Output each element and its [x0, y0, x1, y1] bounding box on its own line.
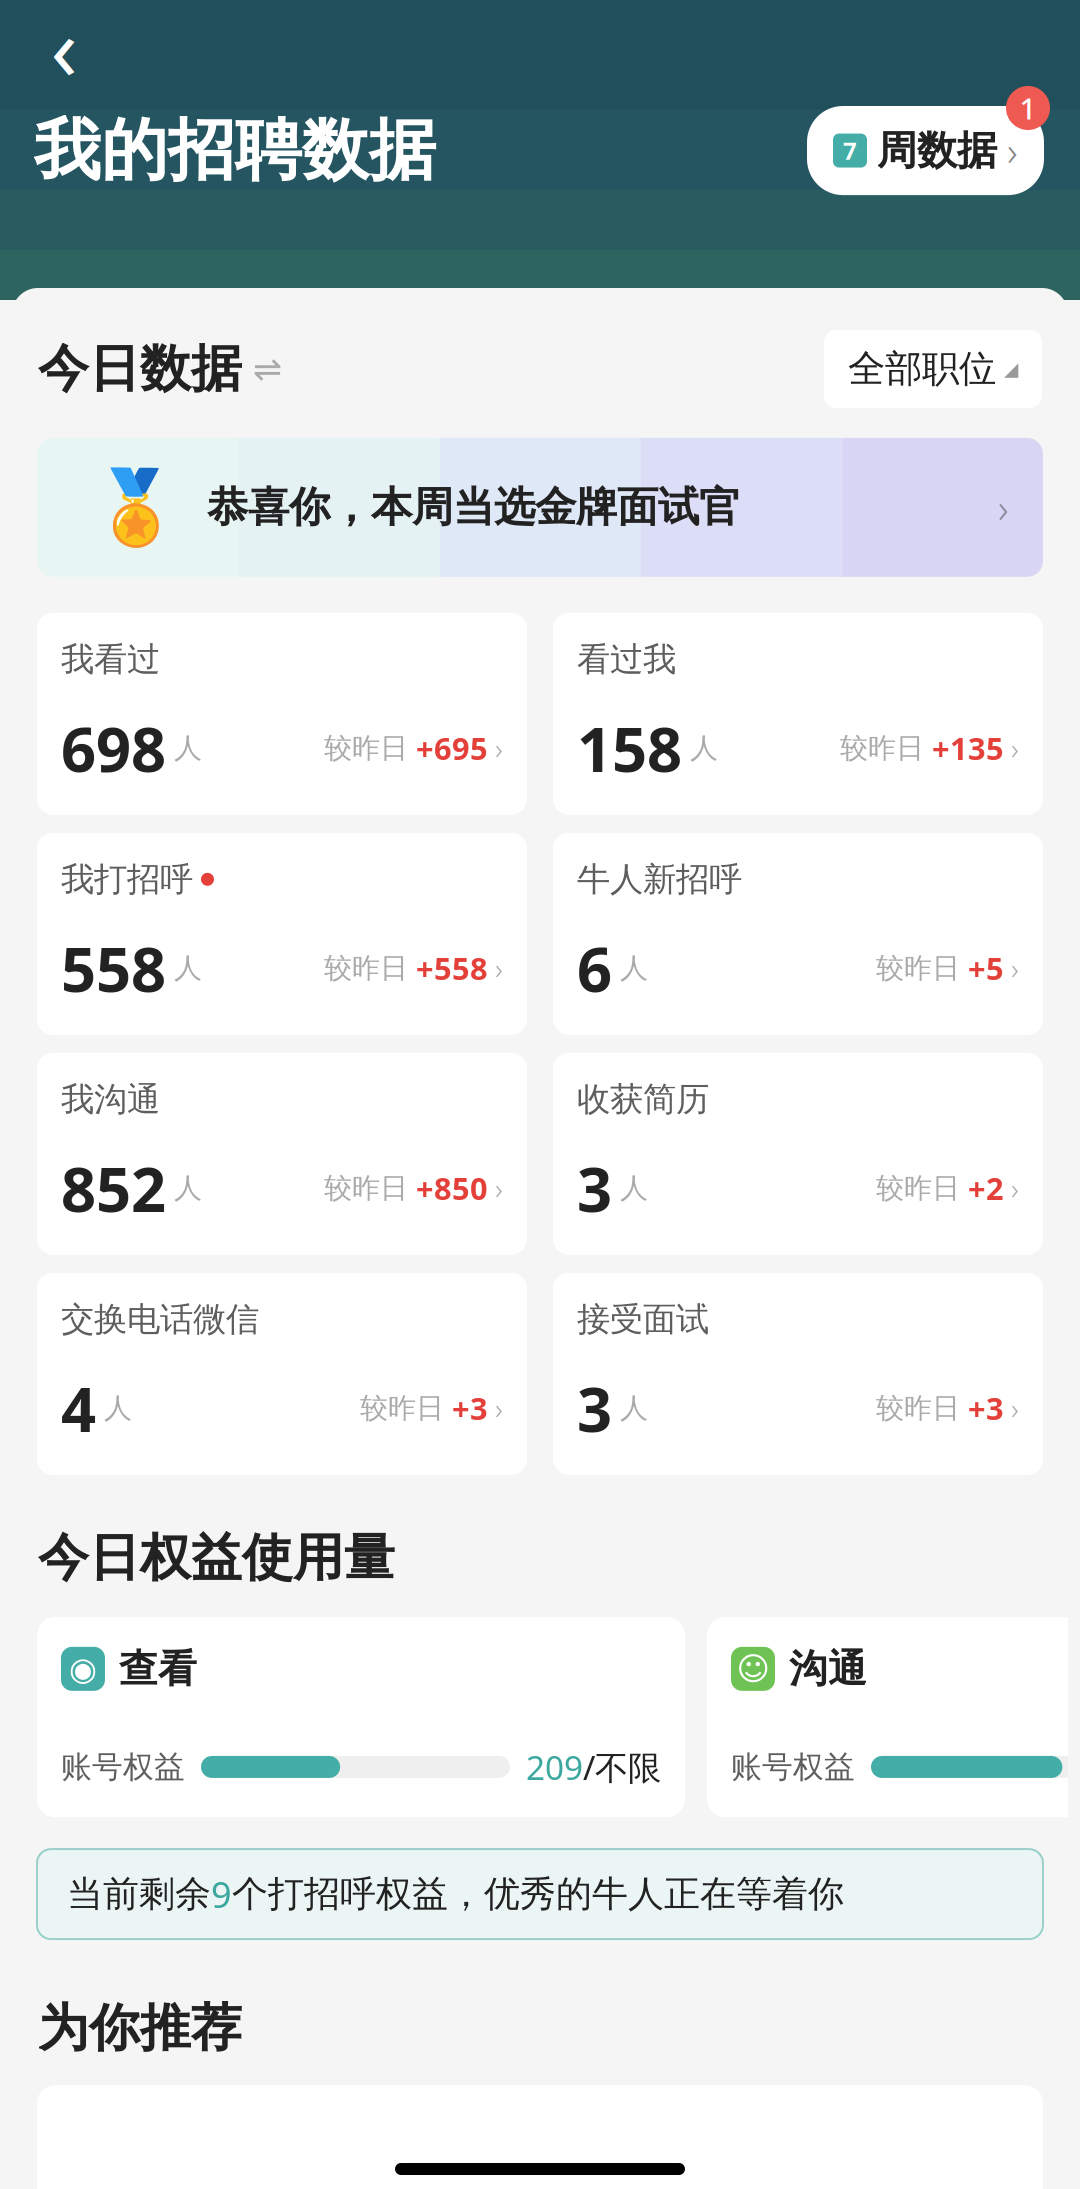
staticText: 我看过 [61, 639, 160, 680]
staticText: 人 [612, 1171, 648, 1205]
staticText: 558 [61, 927, 166, 1009]
staticText: ◢ [1004, 358, 1018, 379]
staticText: 今日数据 [38, 338, 242, 400]
staticText: 查看 [119, 1645, 197, 1693]
staticText: 852 [61, 1147, 166, 1229]
staticText: +3 [444, 1388, 488, 1428]
staticText: › [495, 729, 503, 768]
staticText: 账号权益 [731, 1748, 855, 1786]
staticText: +558 [408, 948, 488, 988]
staticText: ☺ [736, 1651, 769, 1687]
staticText: ◉ [69, 1651, 97, 1687]
staticText: ‹ [50, 0, 77, 104]
staticText: › [1011, 949, 1019, 988]
button[interactable]: 我看过 [37, 613, 527, 815]
staticText: 接受面试 [577, 1299, 709, 1340]
staticText: 人 [682, 731, 718, 765]
staticText: 较昨日 [876, 951, 960, 985]
staticText: 账号权益 [61, 1748, 185, 1786]
staticText: 较昨日 [324, 731, 408, 765]
staticText: +135 [924, 728, 1004, 768]
staticText: 3 [577, 1367, 612, 1449]
staticText: 我打招呼 [61, 859, 193, 900]
button[interactable]: 7 [807, 106, 1044, 195]
staticText: 3 [577, 1147, 612, 1229]
staticText: › [495, 1169, 503, 1208]
staticText: 个打招呼权益，优秀的牛人正在等着你 [232, 1872, 844, 1916]
staticText: 全部职位 [848, 346, 996, 392]
staticText: 我的招聘数据 [34, 110, 436, 191]
staticText: 沟通 [789, 1645, 867, 1693]
button[interactable]: 🏅 [37, 438, 1043, 577]
button[interactable]: 我沟通 [37, 1053, 527, 1255]
staticText: 今日权益使用量 [38, 1527, 395, 1589]
button[interactable]: ◉ [37, 1617, 685, 1817]
staticText: 209 [526, 1745, 583, 1789]
staticText: 🏅 [91, 466, 181, 548]
staticText: › [495, 949, 503, 988]
button[interactable]: 我打招呼 [37, 833, 527, 1035]
staticText: +3 [960, 1388, 1004, 1428]
button[interactable]: 交换电话微信 [37, 1273, 527, 1475]
staticText: 看过我 [577, 639, 676, 680]
staticText: +850 [408, 1168, 488, 1208]
staticText: 人 [166, 951, 202, 985]
button[interactable]: 全部职位 [824, 330, 1042, 408]
staticText: 牛人新招呼 [577, 859, 742, 900]
staticText: 7 [843, 135, 857, 166]
staticText: 较昨日 [360, 1391, 444, 1425]
staticText: 当前剩余 [67, 1872, 211, 1916]
button[interactable]: 当前剩余 [37, 1849, 1043, 1939]
staticText: 较昨日 [840, 731, 924, 765]
staticText: › [1007, 124, 1018, 177]
button[interactable]: 返回 [26, 8, 102, 84]
staticText: 周数据 [877, 126, 997, 175]
staticText: 1 [1019, 88, 1036, 127]
staticText: +2 [960, 1168, 1004, 1208]
staticText: ⇌ [242, 349, 282, 389]
staticText: 人 [166, 1171, 202, 1205]
button[interactable]: 收获简历 [553, 1053, 1043, 1255]
staticText: 4 [61, 1367, 96, 1449]
button[interactable]: 接受面试 [553, 1273, 1043, 1475]
staticText: › [998, 481, 1009, 534]
staticText: 我沟通 [61, 1079, 160, 1120]
staticText: › [1011, 729, 1019, 768]
staticText: 较昨日 [324, 1171, 408, 1205]
staticText: 698 [61, 707, 166, 789]
staticText: 人 [612, 951, 648, 985]
staticText: 158 [577, 707, 682, 789]
staticText: 9 [211, 1870, 232, 1918]
button[interactable]: ☺ [707, 1617, 1080, 1817]
staticText: › [495, 1389, 503, 1428]
staticText: +5 [960, 948, 1004, 988]
staticText: 人 [612, 1391, 648, 1425]
staticText: 收获简历 [577, 1079, 709, 1120]
staticText: › [1011, 1389, 1019, 1428]
staticText: 6 [577, 927, 612, 1009]
staticText: 交换电话微信 [61, 1299, 259, 1340]
staticText: +695 [408, 728, 488, 768]
staticText: 恭喜你，本周当选金牌面试官 [207, 482, 740, 533]
button[interactable]: 牛人新招呼 [553, 833, 1043, 1035]
staticText: /不限 [583, 1745, 661, 1789]
staticText: 较昨日 [876, 1391, 960, 1425]
staticText: 较昨日 [324, 951, 408, 985]
staticText: › [1011, 1169, 1019, 1208]
button[interactable]: 看过我 [553, 613, 1043, 815]
staticText: 为你推荐 [38, 1997, 242, 2059]
staticText: 人 [166, 731, 202, 765]
staticText: 较昨日 [876, 1171, 960, 1205]
staticText: 人 [96, 1391, 132, 1425]
